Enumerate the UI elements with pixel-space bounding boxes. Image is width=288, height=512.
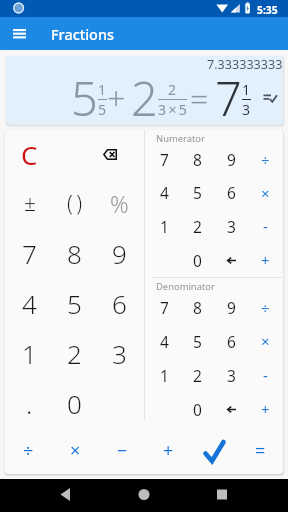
button[interactable]: × — [248, 324, 282, 358]
staticText: ÷ — [261, 150, 270, 170]
button[interactable]: 6 — [97, 278, 142, 328]
staticText: 2 — [168, 80, 177, 99]
button[interactable]: 8 — [52, 228, 97, 278]
staticText: × — [261, 183, 270, 203]
button[interactable]: 5 — [52, 278, 97, 328]
button[interactable]: + — [145, 428, 191, 473]
staticText: 5 — [71, 66, 98, 125]
button[interactable]: 5 — [181, 176, 214, 209]
staticText: 8 — [67, 236, 82, 271]
staticText: 4 — [160, 182, 169, 203]
button[interactable]: 3 — [97, 328, 142, 378]
staticText: 3 — [242, 100, 251, 119]
button[interactable]: 0 — [181, 392, 214, 426]
button[interactable]: ± — [7, 179, 52, 228]
button[interactable]: Backspace — [214, 392, 248, 426]
button[interactable]: 8 — [181, 143, 214, 176]
button[interactable]: 9 — [214, 143, 248, 176]
button[interactable]: 2 — [181, 209, 214, 243]
button[interactable]: 4 — [148, 176, 181, 209]
button[interactable]: C — [7, 130, 52, 179]
staticText: 6 — [227, 331, 236, 352]
staticText: Denominator — [156, 280, 215, 293]
staticText: × — [70, 438, 81, 463]
button[interactable]: 9 — [214, 291, 248, 324]
button[interactable]: - — [248, 358, 282, 392]
button[interactable]: 5 — [181, 324, 214, 358]
button[interactable]: % — [97, 179, 142, 228]
staticText: + — [163, 438, 174, 463]
button[interactable]: 3 — [214, 358, 248, 392]
button[interactable]: 7.333333333 — [6, 56, 283, 125]
button[interactable]: 4 — [148, 324, 181, 358]
staticText: 9 — [227, 297, 236, 318]
button[interactable]: Backspace — [214, 243, 248, 277]
staticText: + — [261, 250, 270, 270]
button[interactable]: . — [7, 378, 52, 428]
button[interactable]: 3 — [214, 209, 248, 243]
staticText: × — [261, 331, 270, 351]
button[interactable]: 0 — [52, 378, 97, 428]
staticText: Numerator — [156, 132, 205, 145]
staticText: 5 — [67, 286, 82, 321]
button[interactable]: - — [248, 209, 282, 243]
staticText: ÷ — [23, 438, 34, 463]
button[interactable]: = — [237, 428, 283, 473]
button[interactable]: 1 — [148, 358, 181, 392]
button[interactable]: + — [248, 392, 282, 426]
button[interactable]: ÷ — [5, 428, 52, 473]
button[interactable]: − — [99, 428, 145, 473]
staticText: 5 — [98, 100, 107, 119]
button[interactable]: 8 — [181, 291, 214, 324]
button[interactable]: × — [52, 428, 99, 473]
staticText: 9 — [112, 236, 127, 271]
staticText: 2 — [193, 365, 202, 386]
staticText: 6 — [112, 286, 127, 321]
staticText: Fractions — [51, 25, 114, 45]
button[interactable]: 1 — [148, 209, 181, 243]
button[interactable]: Backspace — [78, 130, 142, 179]
button[interactable]: Equals result — [191, 428, 237, 473]
staticText: 3 — [227, 216, 236, 237]
staticText: 1 — [160, 216, 169, 237]
staticText: 0 — [67, 386, 82, 421]
button[interactable]: 4 — [7, 278, 52, 328]
staticText: - — [263, 365, 268, 385]
button[interactable]: 7 — [7, 228, 52, 278]
staticText: 4 — [160, 331, 169, 352]
other: Backspace — [227, 406, 236, 413]
staticText: 2 — [131, 66, 158, 125]
staticText: 1 — [22, 336, 37, 371]
staticText: 6 — [227, 182, 236, 203]
button[interactable]: 9 — [97, 228, 142, 278]
staticText: 3 — [227, 365, 236, 386]
staticText: 3 — [112, 336, 127, 371]
button[interactable]: × — [248, 176, 282, 209]
button[interactable]: ( ) — [52, 179, 97, 228]
staticText: 7.333333333 — [207, 56, 283, 73]
button[interactable]: 1 — [7, 328, 52, 378]
button[interactable]: 0 — [181, 243, 214, 277]
button[interactable]: 6 — [214, 324, 248, 358]
button[interactable]: + — [248, 243, 282, 277]
button[interactable]: Open navigation menu — [3, 17, 36, 50]
staticText: 5 — [193, 182, 202, 203]
button[interactable]: ÷ — [248, 143, 282, 176]
staticText: 7 — [160, 149, 169, 170]
button[interactable]: 7 — [148, 143, 181, 176]
button[interactable]: 6 — [214, 176, 248, 209]
staticText: 0 — [193, 250, 202, 271]
staticText: 7 — [22, 236, 37, 271]
button[interactable]: 2 — [181, 358, 214, 392]
button[interactable]: 2 — [52, 328, 97, 378]
button[interactable]: ÷ — [248, 291, 282, 324]
staticText: 2 — [67, 336, 82, 371]
button[interactable]: 7 — [148, 291, 181, 324]
other: Backspace — [227, 257, 236, 264]
staticText: 7 — [215, 66, 242, 125]
staticText: = — [255, 438, 266, 463]
